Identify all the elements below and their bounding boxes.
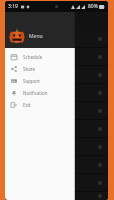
button[interactable]: Exit: [5, 99, 75, 111]
staticText: 80%: [88, 3, 98, 10]
button[interactable]: Support: [5, 75, 75, 87]
button[interactable]: Schedule: [5, 51, 75, 63]
button[interactable]: [5, 120, 108, 137]
button[interactable]: [5, 192, 108, 200]
staticText: Schedule: [23, 54, 43, 60]
staticText: Menu: [29, 33, 43, 40]
button[interactable]: [5, 84, 108, 101]
button[interactable]: [5, 30, 108, 47]
staticText: 3:19: [8, 3, 18, 10]
other: App logo: [9, 28, 25, 44]
staticText: Share: [23, 66, 36, 72]
button[interactable]: [5, 156, 108, 173]
button[interactable]: Notification: [5, 87, 75, 99]
button[interactable]: [5, 138, 108, 155]
button[interactable]: [5, 66, 108, 83]
button[interactable]: Share: [5, 63, 75, 75]
button[interactable]: [5, 102, 108, 119]
staticText: Notification: [23, 90, 48, 96]
staticText: Support: [23, 78, 40, 84]
button[interactable]: [5, 48, 108, 65]
staticText: Exit: [23, 102, 31, 108]
button[interactable]: [5, 174, 108, 191]
button[interactable]: App logo: [5, 12, 75, 48]
